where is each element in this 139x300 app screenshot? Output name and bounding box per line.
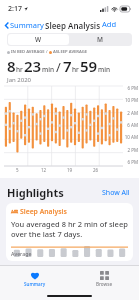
staticText: 6 PM — [124, 159, 138, 165]
staticText: min — [42, 65, 54, 74]
staticText: W — [35, 35, 42, 44]
button[interactable]: Summary — [4, 18, 45, 32]
staticText: ASLEEP AVERAGE — [53, 49, 88, 55]
staticText: min — [98, 65, 110, 74]
staticText: M — [97, 35, 103, 44]
staticText: 7 — [63, 56, 72, 76]
staticText: 2:17 — [8, 4, 22, 14]
staticText: hr — [72, 65, 79, 74]
staticText: 5 — [16, 167, 19, 173]
staticText: Sleep Analysis — [45, 20, 101, 31]
button[interactable]: Browse — [69, 266, 139, 292]
button[interactable]: W — [8, 34, 69, 45]
button[interactable]: Add Data — [101, 17, 135, 33]
staticText: / — [46, 49, 48, 55]
button[interactable]: Summary — [0, 266, 69, 292]
staticText: 8 — [7, 56, 16, 76]
staticText: 59 — [80, 56, 98, 76]
button[interactable]: Show All — [100, 186, 132, 200]
staticText: 26 — [93, 167, 99, 173]
staticText: Browse — [96, 281, 113, 287]
staticText: / — [56, 58, 61, 76]
button[interactable]: M — [69, 34, 131, 45]
staticText: 2 PM — [124, 147, 138, 153]
staticText: 10 AM — [124, 134, 138, 140]
staticText: 19 — [67, 167, 73, 173]
staticText: 12 — [41, 167, 47, 173]
staticText: Average — [11, 250, 32, 257]
staticText: You averaged 8 hr 2 min of sleep over th… — [11, 219, 128, 239]
staticText: Summary — [10, 20, 44, 30]
staticText: 23 — [24, 56, 42, 76]
staticText: 2 AM — [124, 110, 138, 116]
staticText: 6 PM — [124, 85, 138, 91]
staticText: hr — [16, 65, 23, 74]
staticText: IN BED AVERAGE — [11, 49, 45, 55]
staticText: 6 AM — [124, 122, 138, 128]
staticText: Highlights — [7, 185, 64, 200]
staticText: 10 PM — [124, 97, 138, 103]
staticText: Summary — [24, 281, 46, 287]
staticText: Jan 2020 — [7, 76, 32, 84]
button[interactable]: Sleep Analysis — [6, 203, 133, 261]
staticText: Sleep Analysis — [20, 207, 67, 216]
